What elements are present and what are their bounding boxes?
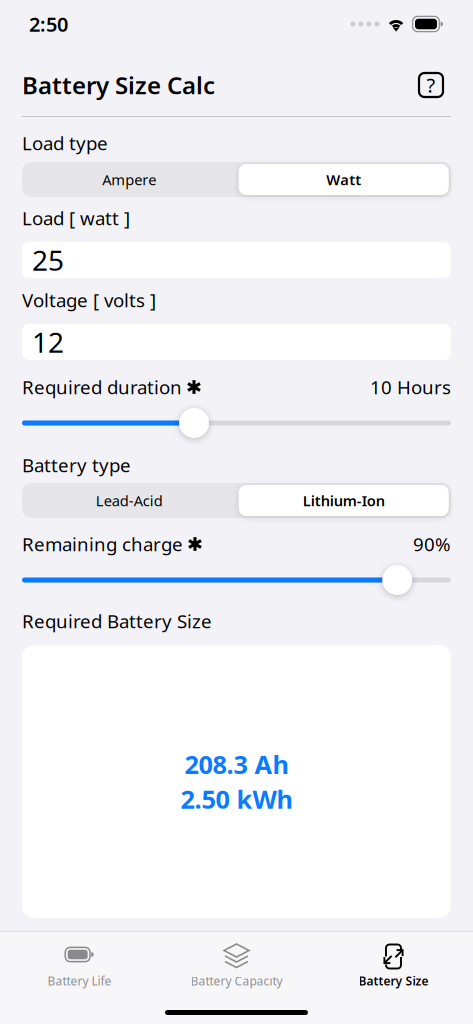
button[interactable]: Lead-Acid [22, 483, 236, 518]
button[interactable]: Ampere [22, 162, 236, 197]
staticText: Watt [326, 170, 361, 189]
staticText: Remaining charge [22, 532, 183, 556]
staticText: Battery Size [358, 973, 428, 989]
staticText: ? [426, 72, 435, 98]
button[interactable]: Battery Size [315, 932, 472, 986]
staticText: 12 [32, 323, 64, 361]
staticText: 2:50 [29, 11, 68, 37]
staticText: Load type [22, 131, 108, 155]
button[interactable]: Battery Life [1, 932, 158, 986]
staticText: Battery type [22, 453, 131, 477]
staticText: Required duration [22, 375, 182, 399]
button[interactable]: Lithium-Ion [236, 483, 451, 518]
staticText: Voltage [ volts ] [22, 288, 156, 312]
button[interactable]: Watt [236, 162, 451, 197]
staticText: Required Battery Size [22, 609, 212, 633]
staticText: 25 [32, 241, 64, 279]
staticText: 208.3 Ah [184, 747, 288, 781]
staticText: 2.50 kWh [180, 782, 292, 816]
staticText: Ampere [102, 170, 156, 189]
button[interactable]: Help [419, 70, 451, 100]
staticText: Battery Life [47, 973, 111, 989]
staticText: Lithium-Ion [303, 491, 385, 510]
staticText: Lead-Acid [96, 491, 163, 510]
staticText: Battery Size Calc [22, 69, 215, 101]
button[interactable]: Battery Capacity [158, 932, 315, 986]
staticText: 10 Hours [370, 375, 451, 399]
staticText: 90% [413, 532, 451, 556]
staticText: Load [ watt ] [22, 206, 130, 230]
staticText: Battery Capacity [190, 973, 282, 989]
